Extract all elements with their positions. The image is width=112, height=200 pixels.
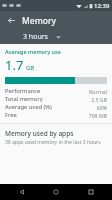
staticText: GB	[26, 64, 35, 72]
staticText: Memory	[22, 15, 57, 27]
button[interactable]: Back	[9, 184, 35, 200]
staticText: 69%	[96, 104, 107, 111]
button[interactable]: 3 hours	[21, 30, 63, 44]
staticText: Total memory	[5, 95, 91, 103]
button[interactable]: Free	[0, 111, 112, 119]
staticText: Performance	[5, 87, 88, 95]
button[interactable]: Performance	[0, 87, 112, 95]
staticText: Free	[5, 111, 88, 119]
staticText: 2.5 GB	[91, 96, 107, 103]
staticText: Average used (%)	[5, 103, 96, 111]
staticText: Memory used by apps	[5, 129, 74, 138]
staticText: 1.7	[5, 56, 24, 74]
staticText: 3 hours	[23, 32, 48, 42]
button[interactable]: Total memory	[0, 95, 112, 103]
button[interactable]: Memory used by apps	[0, 124, 112, 151]
staticText: 799 MB	[88, 112, 107, 119]
staticText: Normal	[88, 88, 107, 95]
staticText: Average memory use	[5, 48, 61, 55]
button[interactable]: Navigate up	[0, 11, 22, 30]
staticText: 39 apps used memory in the last 3 hours	[5, 139, 101, 146]
button[interactable]: Recent apps	[78, 184, 104, 200]
button[interactable]: Average used (%)	[0, 103, 112, 111]
button[interactable]: Home	[43, 184, 69, 200]
staticText: 12:39	[94, 2, 110, 10]
